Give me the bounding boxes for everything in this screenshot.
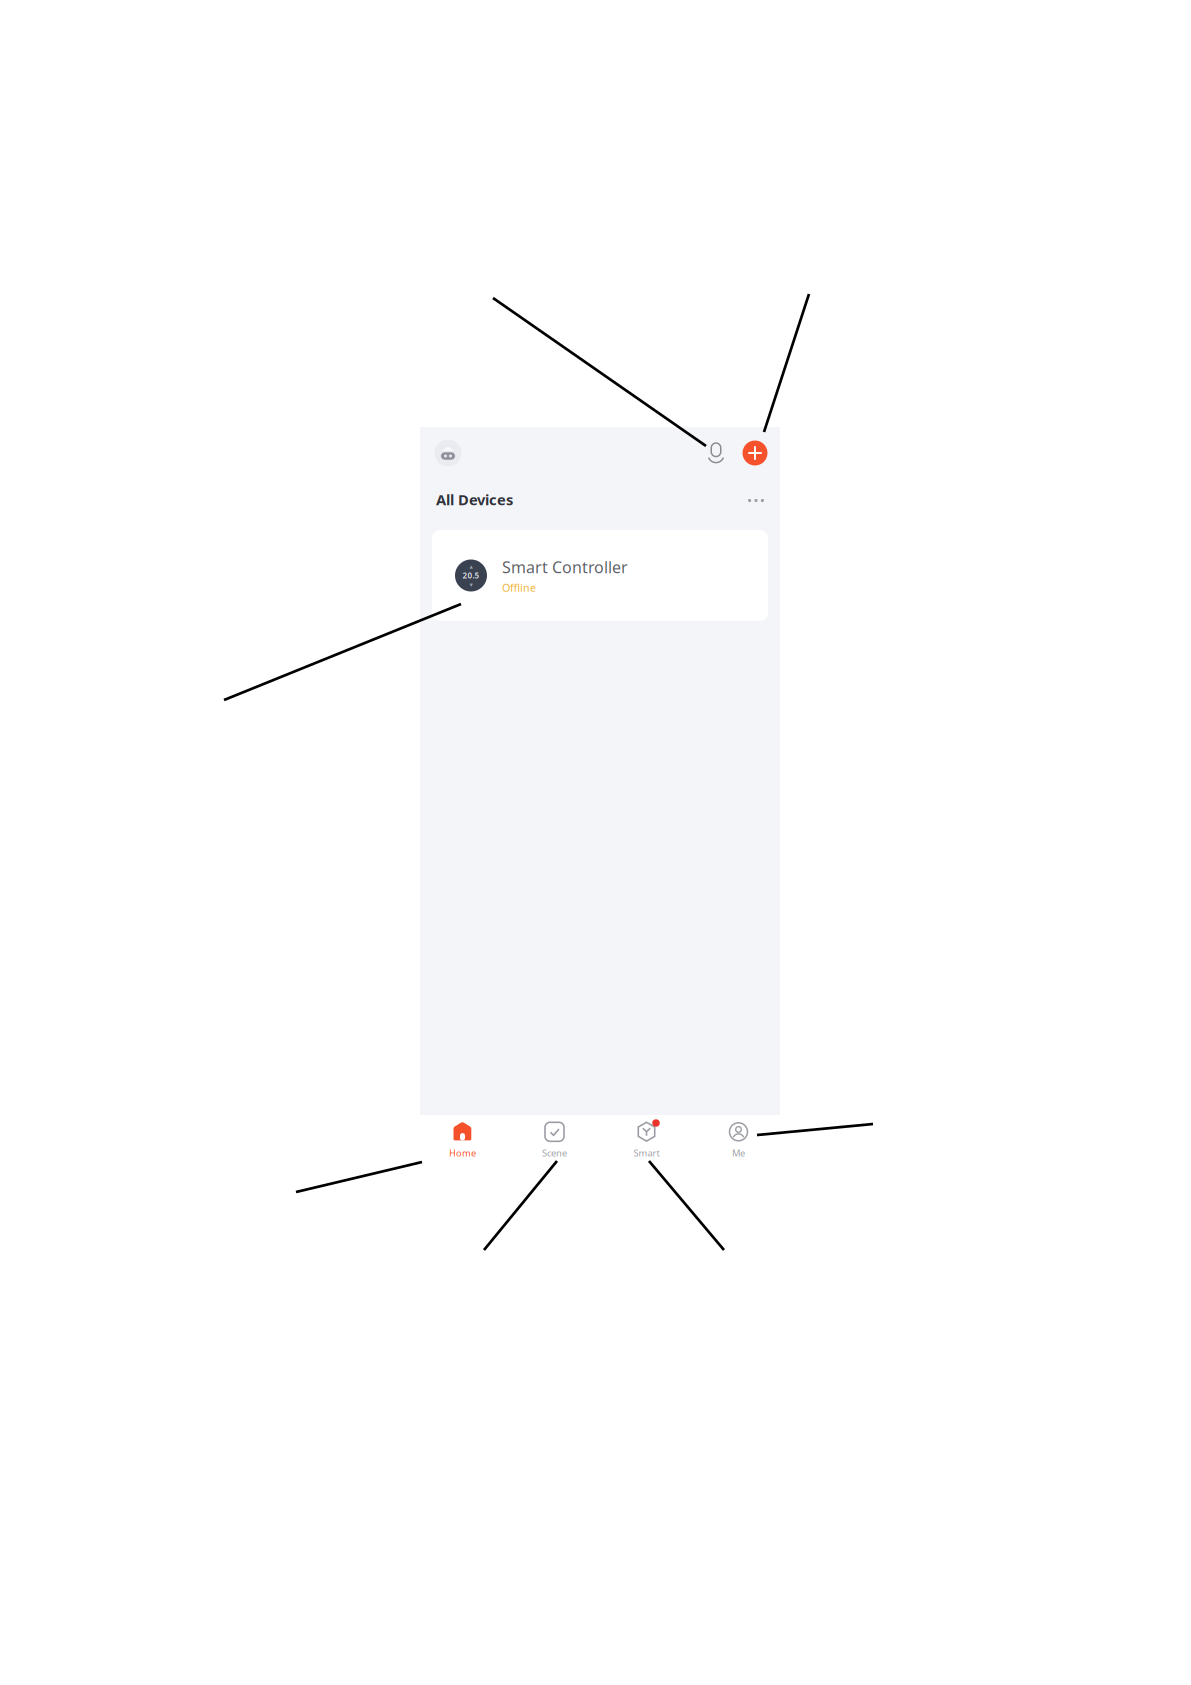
button[interactable]: Scene — [508, 1115, 600, 1160]
button[interactable]: Smart — [600, 1115, 692, 1160]
button[interactable]: ▴ — [432, 530, 768, 621]
staticText: Me — [732, 1147, 745, 1159]
staticText: Scene — [542, 1147, 567, 1159]
button[interactable]: Home — [416, 1115, 508, 1160]
staticText: Smart Controller — [502, 556, 628, 577]
staticText: Smart — [633, 1147, 659, 1159]
staticText: Offline — [502, 580, 536, 595]
button[interactable]: Me — [692, 1115, 784, 1160]
staticText: ▴ — [469, 563, 472, 570]
staticText: ▾ — [469, 581, 472, 588]
button[interactable]: Home — [428, 433, 468, 473]
button[interactable]: Add device — [736, 434, 774, 472]
button[interactable]: Voice control — [696, 436, 736, 470]
staticText: 20.5 — [462, 570, 479, 581]
button[interactable]: More options — [740, 493, 772, 515]
staticText: Home — [449, 1147, 476, 1159]
staticText: All Devices — [436, 490, 513, 509]
